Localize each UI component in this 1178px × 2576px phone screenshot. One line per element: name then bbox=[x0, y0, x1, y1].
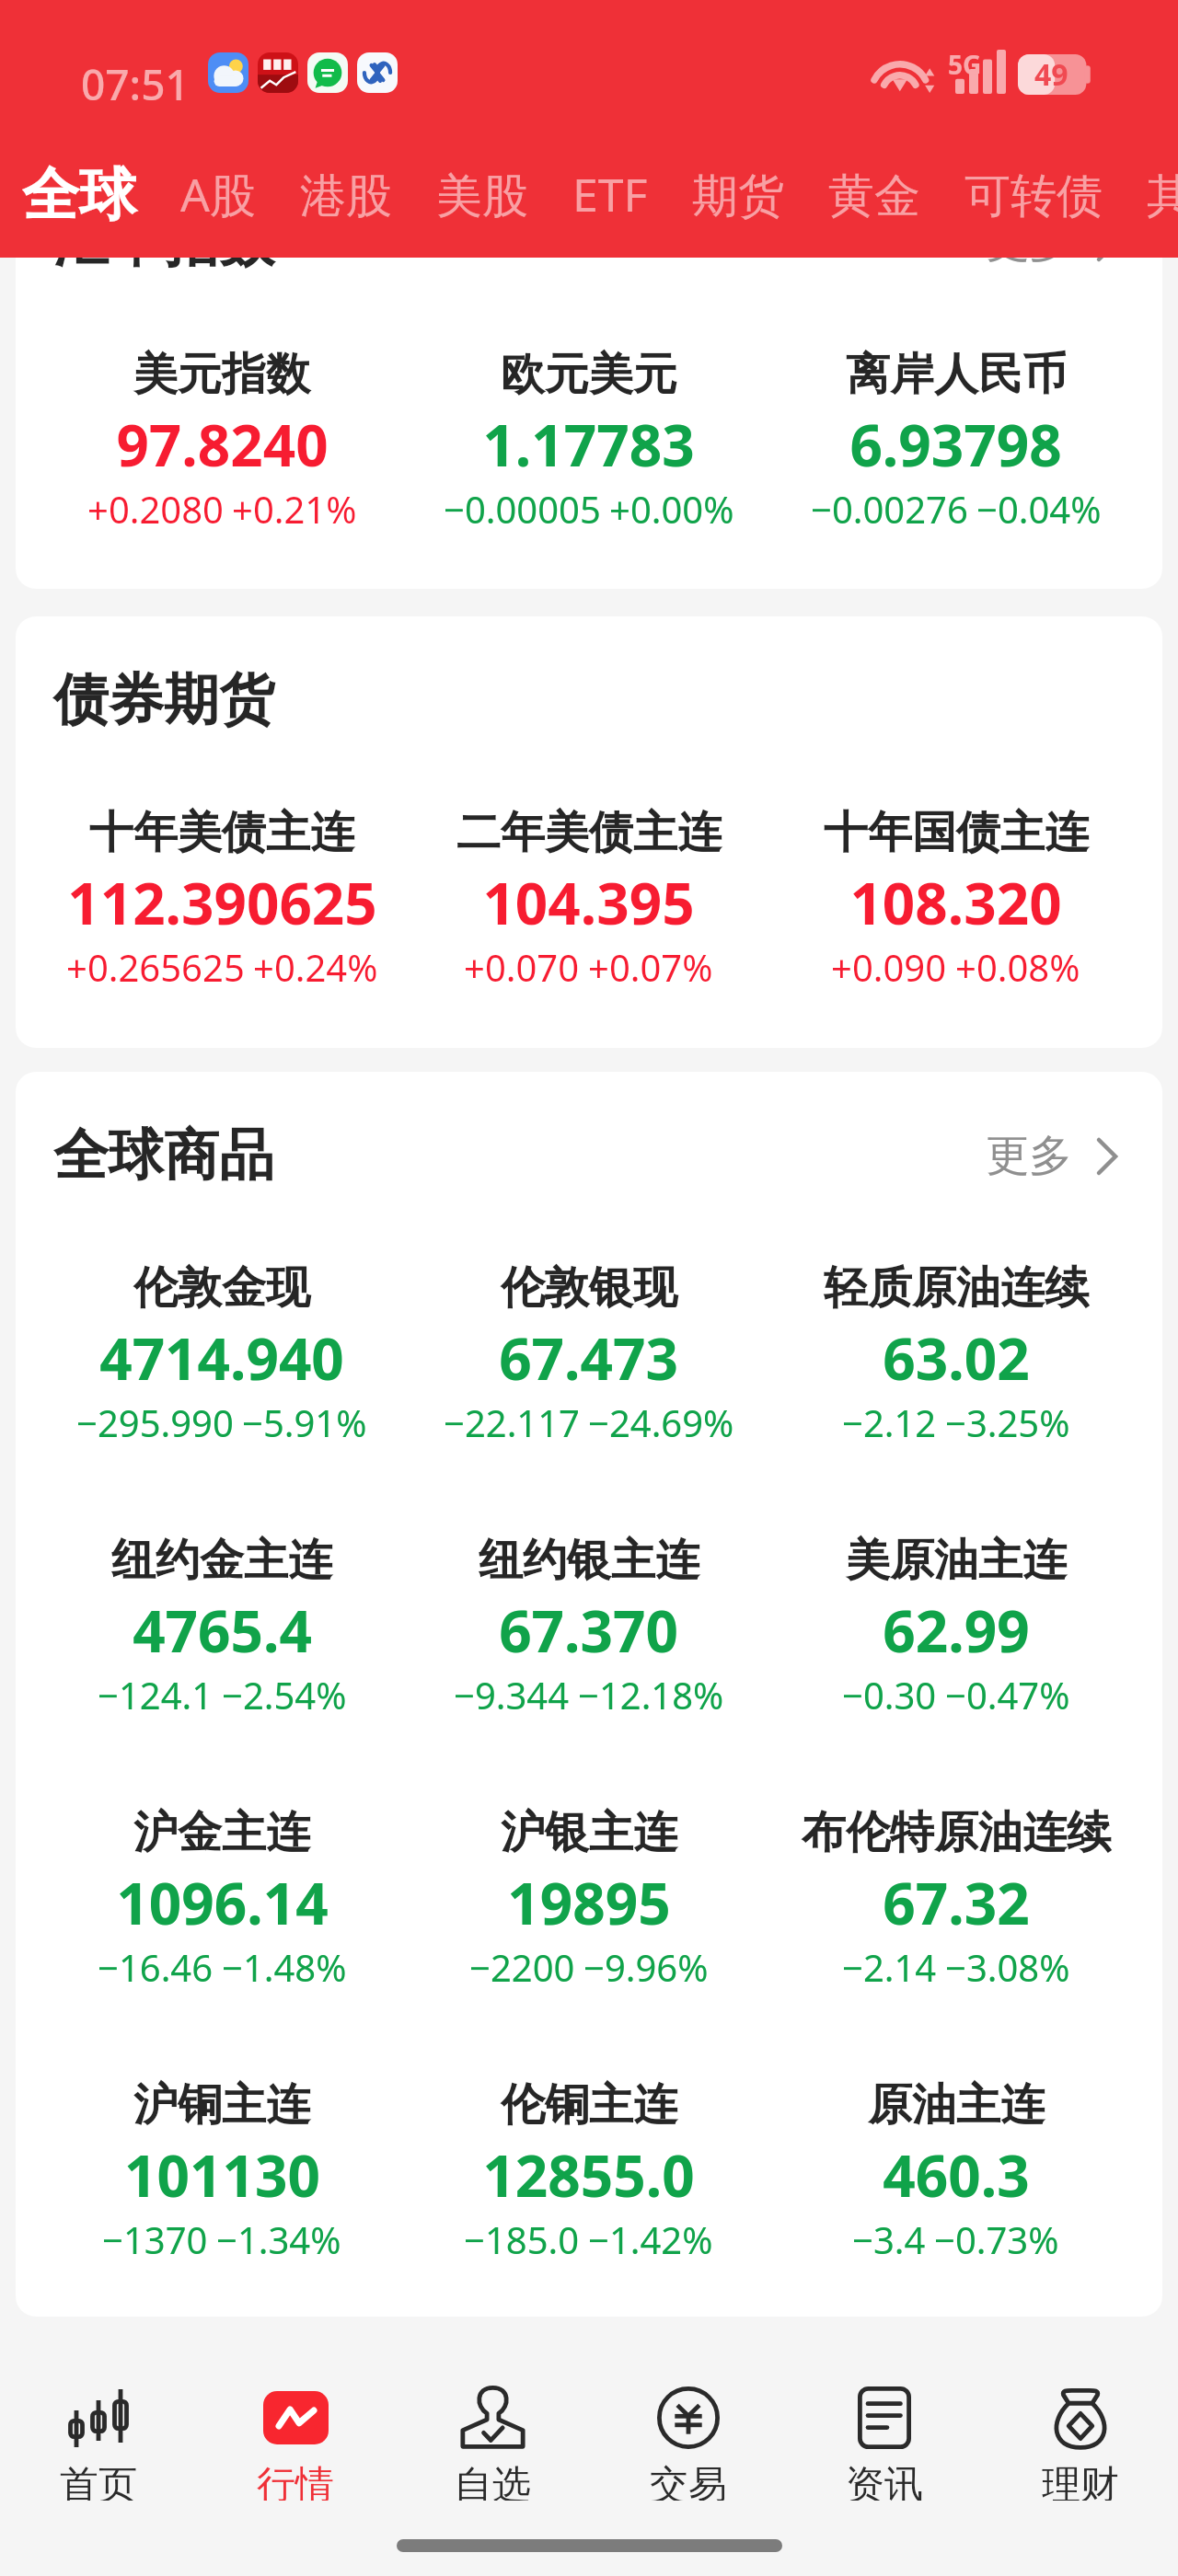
button[interactable]: 全球 bbox=[22, 159, 136, 258]
staticText: 67.473 bbox=[499, 1319, 678, 1394]
staticText: 轻质原油连续 bbox=[824, 1260, 1089, 1316]
staticText: 可转债 bbox=[964, 167, 1103, 225]
staticText: 欧元美元 bbox=[501, 347, 677, 402]
staticText: 伦铜主连 bbox=[501, 2077, 677, 2133]
staticText: 美元指数 bbox=[133, 347, 310, 402]
staticText: 其 bbox=[1147, 167, 1178, 225]
button[interactable]: 行情 bbox=[197, 2317, 394, 2501]
staticText: 离岸人民币 bbox=[846, 347, 1067, 402]
staticText: 汇率指数 bbox=[53, 207, 274, 277]
staticText: −185.0 bbox=[464, 2214, 580, 2259]
staticText: −5.91% bbox=[242, 1397, 367, 1442]
staticText: +0.00% bbox=[609, 484, 734, 528]
staticText: 首页 bbox=[60, 2461, 137, 2501]
button[interactable]: 沪金主连 bbox=[39, 1801, 405, 1983]
staticText: ETF bbox=[572, 163, 648, 225]
staticText: 1.17783 bbox=[482, 406, 695, 480]
button[interactable]: 首页 bbox=[0, 2317, 197, 2501]
button[interactable]: 离岸人民币 bbox=[772, 343, 1139, 524]
button[interactable]: 自选 bbox=[394, 2317, 590, 2501]
staticText: 二年美债主连 bbox=[456, 805, 722, 860]
staticText: −0.04% bbox=[976, 484, 1102, 528]
staticText: −0.00276 bbox=[811, 484, 968, 528]
staticText: −0.47% bbox=[945, 1670, 1070, 1714]
staticText: 美原油主连 bbox=[846, 1533, 1067, 1588]
staticText: +0.090 bbox=[831, 942, 947, 986]
button[interactable]: ETF bbox=[572, 163, 648, 258]
button[interactable]: 原油主连 bbox=[772, 2074, 1139, 2255]
staticText: 沪金主连 bbox=[133, 1805, 310, 1860]
button[interactable]: 港股 bbox=[300, 167, 392, 258]
button[interactable]: 美元指数 bbox=[39, 343, 405, 524]
button[interactable]: 其 bbox=[1147, 167, 1178, 258]
staticText: 07:51 bbox=[81, 55, 190, 113]
staticText: 63.02 bbox=[883, 1319, 1030, 1394]
staticText: −2.12 bbox=[842, 1397, 937, 1442]
button[interactable]: 布伦特原油连续 bbox=[772, 1801, 1139, 1983]
staticText: −0.30 bbox=[842, 1670, 937, 1714]
staticText: 101130 bbox=[124, 2136, 320, 2211]
button[interactable]: 伦敦银现 bbox=[405, 1257, 772, 1438]
button[interactable]: 伦敦金现 bbox=[39, 1257, 405, 1438]
staticText: 黄金 bbox=[828, 167, 920, 225]
staticText: 沪银主连 bbox=[501, 1805, 677, 1860]
staticText: −16.46 bbox=[98, 1942, 214, 1986]
button[interactable]: 交易 bbox=[590, 2317, 786, 2501]
staticText: 4714.940 bbox=[99, 1319, 344, 1394]
button[interactable]: 期货 bbox=[692, 167, 784, 258]
staticText: 行情 bbox=[257, 2461, 334, 2501]
button[interactable]: 欧元美元 bbox=[405, 343, 772, 524]
staticText: +0.24% bbox=[253, 942, 378, 986]
button[interactable]: 纽约银主连 bbox=[405, 1529, 772, 1710]
staticText: 62.99 bbox=[883, 1592, 1030, 1666]
button[interactable]: A股 bbox=[180, 163, 256, 258]
button[interactable]: 理财 bbox=[982, 2317, 1178, 2501]
staticText: 交易 bbox=[650, 2461, 727, 2501]
staticText: −1.42% bbox=[588, 2214, 713, 2259]
button[interactable]: 更多 bbox=[986, 210, 1117, 275]
staticText: 112.390625 bbox=[67, 864, 377, 938]
staticText: 4765.4 bbox=[133, 1592, 312, 1666]
button[interactable]: 更多 bbox=[986, 1123, 1117, 1189]
staticText: 纽约银主连 bbox=[479, 1533, 699, 1588]
staticText: −2.14 bbox=[842, 1942, 937, 1986]
staticText: −1370 bbox=[102, 2214, 208, 2259]
button[interactable]: 伦铜主连 bbox=[405, 2074, 772, 2255]
staticText: −3.25% bbox=[945, 1397, 1070, 1442]
button[interactable]: 美股 bbox=[436, 167, 528, 258]
button[interactable]: 沪铜主连 bbox=[39, 2074, 405, 2255]
staticText: −3.08% bbox=[945, 1942, 1070, 1986]
staticText: 1096.14 bbox=[116, 1864, 329, 1938]
button[interactable]: 十年国债主连 bbox=[772, 801, 1139, 983]
staticText: +0.2080 bbox=[87, 484, 224, 528]
staticText: 港股 bbox=[300, 167, 392, 225]
button[interactable]: 美原油主连 bbox=[772, 1529, 1139, 1710]
staticText: 104.395 bbox=[482, 864, 695, 938]
button[interactable]: 可转债 bbox=[964, 167, 1103, 258]
button[interactable]: 二年美债主连 bbox=[405, 801, 772, 983]
staticText: −9.96% bbox=[583, 1942, 709, 1986]
staticText: 更多 bbox=[986, 215, 1072, 270]
staticText: −24.69% bbox=[588, 1397, 734, 1442]
staticText: 美股 bbox=[436, 167, 528, 225]
staticText: 12855.0 bbox=[482, 2136, 695, 2211]
button[interactable]: 资讯 bbox=[786, 2317, 982, 2501]
staticText: 自选 bbox=[454, 2461, 531, 2501]
staticText: 67.370 bbox=[499, 1592, 678, 1666]
staticText: −124.1 bbox=[98, 1670, 214, 1714]
button[interactable]: 纽约金主连 bbox=[39, 1529, 405, 1710]
staticText: 67.32 bbox=[883, 1864, 1030, 1938]
staticText: 理财 bbox=[1042, 2461, 1119, 2501]
button[interactable]: 十年美债主连 bbox=[39, 801, 405, 983]
staticText: −22.117 bbox=[444, 1397, 580, 1442]
staticText: −12.18% bbox=[578, 1670, 724, 1714]
staticText: 伦敦金现 bbox=[133, 1260, 310, 1316]
button[interactable]: 黄金 bbox=[828, 167, 920, 258]
staticText: 纽约金主连 bbox=[111, 1533, 332, 1588]
button[interactable]: 轻质原油连续 bbox=[772, 1257, 1139, 1438]
button[interactable]: 沪银主连 bbox=[405, 1801, 772, 1983]
staticText: +0.08% bbox=[955, 942, 1080, 986]
staticText: 108.320 bbox=[849, 864, 1062, 938]
staticText: 6.93798 bbox=[849, 406, 1062, 480]
staticText: +0.21% bbox=[232, 484, 357, 528]
